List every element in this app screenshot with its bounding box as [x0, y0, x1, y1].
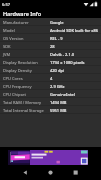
button[interactable]: Manufacturer: [0, 18, 101, 26]
staticText: 1794 x 1080 pixels: [50, 60, 85, 65]
button[interactable]: Total RAM / Memory: [0, 98, 101, 106]
button[interactable]: [20, 169, 30, 178]
staticText: CPU Chipset: [3, 92, 27, 97]
staticText: Dalvik - 2.1.0: [50, 52, 75, 57]
staticText: Google: [50, 20, 64, 25]
button[interactable]: CPU Chipset: [0, 90, 101, 98]
staticText: SDK: [3, 44, 11, 49]
button[interactable]: CPU Frequency: [0, 82, 101, 90]
staticText: 6:57: [2, 2, 10, 7]
button[interactable]: CPU Cores: [0, 74, 101, 82]
staticText: 1494 MB: [50, 100, 67, 105]
button[interactable]: Total Internal Storage: [0, 106, 101, 114]
button[interactable]: Display Resolution: [0, 58, 101, 66]
staticText: 2.9 GHz: [50, 84, 65, 89]
button[interactable]: JVM: [0, 50, 101, 58]
staticText: GenuineIntel: [50, 92, 75, 97]
staticText: 4: [50, 76, 53, 81]
staticText: Display Density: [3, 68, 32, 73]
staticText: OS Version: [3, 36, 24, 41]
staticText: Manufacturer: [3, 20, 29, 25]
staticText: 28: [50, 44, 55, 49]
staticText: JVM: [3, 52, 11, 57]
button[interactable]: SDK: [0, 42, 101, 50]
staticText: Total Internal Storage: [3, 108, 44, 113]
staticText: Android SDK built for x86: [50, 28, 99, 33]
staticText: 5951 MB: [50, 108, 67, 113]
staticText: Model: [3, 28, 15, 33]
button[interactable]: Display Density: [0, 66, 101, 74]
staticText: Display Resolution: [3, 60, 38, 65]
button[interactable]: Model: [0, 26, 101, 34]
staticText: 420 dpi: [50, 68, 64, 73]
button[interactable]: [8, 150, 88, 165]
button[interactable]: [70, 169, 80, 178]
staticText: REL - 9: [50, 36, 63, 41]
staticText: CPU Frequency: [3, 84, 32, 89]
button[interactable]: OS Version: [0, 34, 101, 42]
staticText: Total RAM / Memory: [3, 100, 42, 105]
button[interactable]: [45, 169, 55, 178]
staticText: CPU Cores: [3, 76, 23, 81]
staticText: Hardware Info: [3, 10, 41, 17]
